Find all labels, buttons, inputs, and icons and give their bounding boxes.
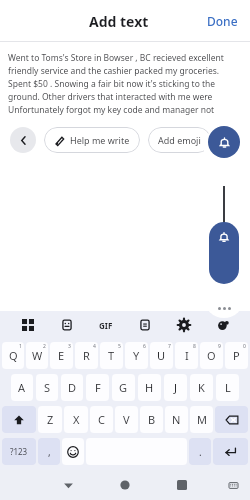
staticText: Help me write xyxy=(70,134,130,146)
staticText: O xyxy=(207,348,216,363)
staticText: K xyxy=(198,380,205,395)
staticText: P xyxy=(233,348,240,363)
staticText: friendly service and the cashier packed … xyxy=(8,65,220,78)
button[interactable]: ?123 xyxy=(2,438,36,465)
staticText: Done xyxy=(207,13,238,29)
staticText: D xyxy=(68,380,77,395)
button[interactable]: Back xyxy=(10,127,36,153)
staticText: N xyxy=(172,412,181,427)
button[interactable]: Notification reminder xyxy=(208,126,240,158)
staticText: C xyxy=(98,412,105,427)
button[interactable]: O xyxy=(200,342,223,369)
staticText: Add emoji xyxy=(158,134,201,146)
staticText: X xyxy=(73,412,80,427)
staticText: I xyxy=(185,348,189,363)
button[interactable]: Add emoji xyxy=(148,127,211,153)
button[interactable]: M xyxy=(190,406,213,433)
button[interactable]: U xyxy=(150,342,173,369)
button[interactable]: Shift xyxy=(2,406,36,433)
staticText: Unfortunately forgot my key code and man… xyxy=(8,104,244,117)
button[interactable]: Clipboard xyxy=(125,311,164,339)
button[interactable]: . xyxy=(189,438,211,465)
button[interactable]: Themes xyxy=(203,311,242,339)
button[interactable]: Backspace xyxy=(215,406,248,433)
staticText: Z xyxy=(47,412,54,427)
staticText: Q xyxy=(9,348,18,363)
staticText: V xyxy=(123,412,130,427)
staticText: H xyxy=(145,380,154,395)
staticText: 8 xyxy=(193,343,196,350)
button[interactable]: Switch keyboard xyxy=(224,476,242,494)
staticText: F xyxy=(95,380,101,395)
button[interactable]: V xyxy=(115,406,138,433)
button[interactable]: S xyxy=(36,374,58,401)
button[interactable]: Notification xyxy=(209,222,239,284)
staticText: T xyxy=(108,348,115,363)
button[interactable]: P xyxy=(225,342,248,369)
staticText: J xyxy=(174,380,178,395)
button[interactable]: GIF xyxy=(86,311,125,339)
button[interactable]: Recents xyxy=(169,472,195,498)
staticText: 7 xyxy=(168,343,171,350)
button[interactable]: G xyxy=(112,374,135,401)
staticText: 9 xyxy=(218,343,221,350)
button[interactable]: T xyxy=(100,342,123,369)
button[interactable]: Apps xyxy=(8,311,47,339)
staticText: Went to Toms's Store in Bowser , BC reci… xyxy=(8,52,224,65)
staticText: S xyxy=(44,380,51,395)
button[interactable]: Z xyxy=(38,406,62,433)
staticText: G xyxy=(119,380,128,395)
button[interactable]: X xyxy=(64,406,88,433)
button[interactable]: Y xyxy=(125,342,148,369)
staticText: 1 xyxy=(19,343,22,350)
button[interactable]: Home xyxy=(112,472,138,498)
button[interactable]: I xyxy=(175,342,198,369)
staticText: ?123 xyxy=(10,446,28,457)
staticText: W xyxy=(32,348,43,363)
button[interactable]: N xyxy=(165,406,188,433)
staticText: B xyxy=(148,412,156,427)
button[interactable]: F xyxy=(86,374,109,401)
button[interactable]: Stickers xyxy=(47,311,86,339)
button[interactable]: Q xyxy=(2,342,24,369)
button[interactable]: C xyxy=(90,406,113,433)
button[interactable]: A xyxy=(11,374,33,401)
staticText: 2 xyxy=(43,343,46,350)
button[interactable]: Enter xyxy=(213,438,248,465)
staticText: ground. Other drivers that interacted wi… xyxy=(8,91,244,104)
button[interactable]: E xyxy=(50,342,73,369)
staticText: , xyxy=(48,445,51,459)
staticText: Y xyxy=(133,348,140,363)
staticText: L xyxy=(225,380,231,395)
staticText: 0 xyxy=(243,343,246,350)
button[interactable]: Done xyxy=(195,7,250,35)
button[interactable]: D xyxy=(61,374,83,401)
button[interactable]: Help me write xyxy=(44,127,140,153)
button[interactable]: B xyxy=(140,406,163,433)
button[interactable]: K xyxy=(190,374,213,401)
staticText: Add text xyxy=(89,12,149,31)
staticText: A xyxy=(18,380,26,395)
button[interactable]: Back xyxy=(55,472,81,498)
staticText: 6 xyxy=(143,343,146,350)
button[interactable]: , xyxy=(38,438,60,465)
button[interactable]: H xyxy=(138,374,161,401)
button[interactable]: J xyxy=(164,374,187,401)
staticText: 3 xyxy=(68,343,71,350)
staticText: . xyxy=(199,445,202,459)
staticText: 4 xyxy=(93,343,96,350)
button[interactable]: R xyxy=(75,342,98,369)
button[interactable]: Settings xyxy=(164,311,203,339)
button[interactable]: Emoji xyxy=(62,438,84,465)
staticText: GIF xyxy=(99,320,113,331)
staticText: M xyxy=(197,412,207,427)
staticText: R xyxy=(83,348,90,363)
staticText: U xyxy=(157,348,166,363)
button[interactable]: L xyxy=(216,374,239,401)
button[interactable]: W xyxy=(26,342,48,369)
staticText: Spent $50 . Snowing a fair bit now it's … xyxy=(8,78,216,91)
staticText: 5 xyxy=(118,343,121,350)
staticText: E xyxy=(58,348,65,363)
